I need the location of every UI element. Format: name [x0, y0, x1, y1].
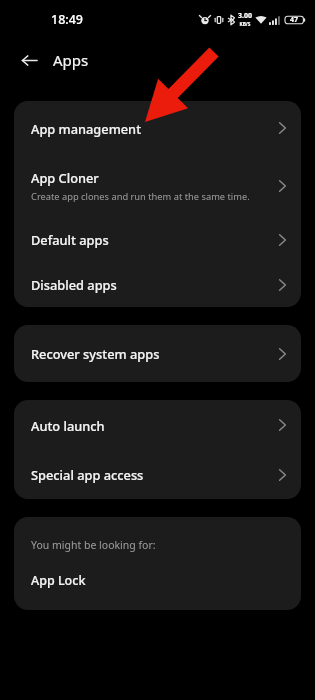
button[interactable]: Special app access	[14, 450, 301, 499]
button[interactable]: Auto launch	[14, 400, 301, 450]
button[interactable]: Disabled apps	[14, 262, 301, 307]
staticText: App management	[31, 120, 142, 137]
button[interactable]: App Cloner	[14, 155, 301, 217]
button[interactable]: Back	[14, 45, 44, 75]
staticText: App Cloner	[31, 169, 99, 186]
button[interactable]: App management	[14, 101, 301, 155]
button[interactable]: App Lock	[14, 566, 301, 594]
staticText: Default apps	[31, 231, 109, 248]
button[interactable]: Recover system apps	[14, 325, 301, 382]
staticText: 3.00	[238, 11, 252, 21]
staticText: KB/S	[239, 21, 251, 28]
staticText: Special app access	[31, 466, 144, 483]
staticText: You might be looking for:	[31, 538, 156, 552]
button[interactable]: Default apps	[14, 217, 301, 262]
staticText: Disabled apps	[31, 276, 117, 293]
staticText: Recover system apps	[31, 345, 160, 362]
staticText: Create app clones and run them at the sa…	[31, 190, 250, 203]
staticText: 18:49	[51, 11, 84, 28]
staticText: Auto launch	[31, 417, 105, 434]
staticText: Apps	[53, 50, 89, 70]
staticText: App Lock	[31, 572, 86, 589]
staticText: 47	[290, 15, 299, 25]
